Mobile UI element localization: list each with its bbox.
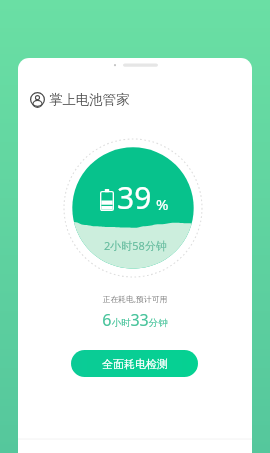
button[interactable]: Account (18, 87, 252, 112)
staticText: 39 (117, 177, 152, 218)
staticText: 2小时58分钟 (104, 238, 167, 253)
button[interactable]: 全面耗电检测 (71, 350, 198, 377)
staticText: 正在耗电,预计可用 (18, 294, 252, 305)
staticText: 全面耗电检测 (102, 357, 168, 371)
staticText: % (156, 194, 169, 214)
other: Account (30, 92, 45, 107)
staticText: 掌上电池管家 (49, 91, 130, 108)
staticText: 6小时33分钟 (18, 309, 252, 331)
